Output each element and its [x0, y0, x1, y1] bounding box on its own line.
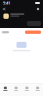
- staticText: <: [2, 5, 5, 13]
- button[interactable]: More: [35, 6, 41, 12]
- button[interactable]: Tab: [32, 85, 43, 93]
- button[interactable]: Back: [1, 6, 7, 12]
- button[interactable]: Tab: [21, 85, 32, 93]
- button[interactable]: Tab: [11, 85, 22, 93]
- button[interactable]: Tab: [0, 85, 11, 93]
- staticText: 9:41: [3, 0, 10, 6]
